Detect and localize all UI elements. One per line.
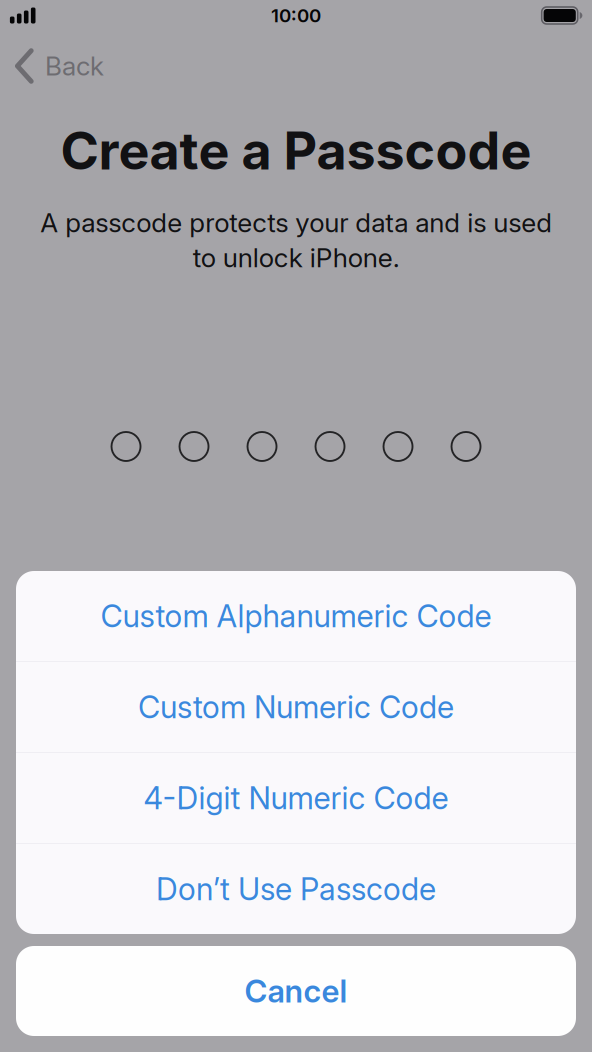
- button[interactable]: Back: [0, 45, 104, 87]
- staticText: Back: [45, 50, 104, 82]
- staticText: Don’t Use Passcode: [156, 870, 436, 907]
- staticText: Create a Passcode: [60, 119, 531, 182]
- button[interactable]: Cancel: [16, 946, 576, 1036]
- staticText: 4-Digit Numeric Code: [143, 779, 448, 816]
- button[interactable]: Custom Numeric Code: [16, 662, 576, 752]
- button[interactable]: 4-Digit Numeric Code: [16, 753, 576, 843]
- staticText: Cancel: [244, 972, 347, 1010]
- staticText: A passcode protects your data and is use…: [40, 207, 552, 273]
- staticText: Custom Numeric Code: [138, 688, 454, 725]
- staticText: Custom Alphanumeric Code: [100, 597, 491, 634]
- button[interactable]: Don’t Use Passcode: [16, 844, 576, 934]
- staticText: 10:00: [271, 4, 321, 27]
- button[interactable]: Custom Alphanumeric Code: [16, 571, 576, 661]
